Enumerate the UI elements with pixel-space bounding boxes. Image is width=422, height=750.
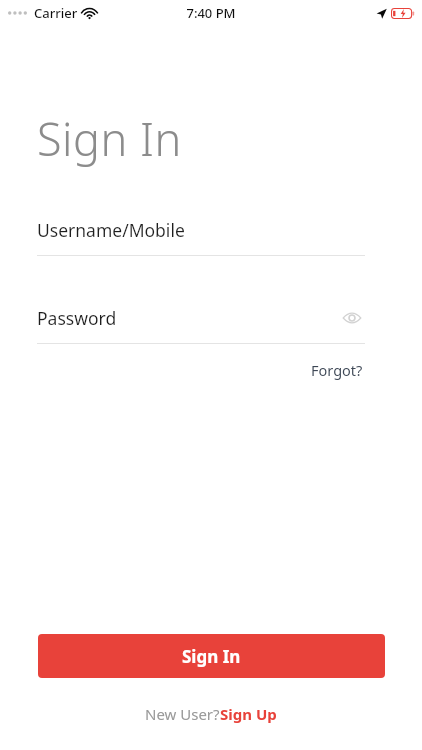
staticText: Username/Mobile	[37, 218, 185, 242]
button[interactable]: Password	[37, 305, 365, 331]
staticText: 7:40 PM	[186, 4, 236, 22]
staticText: Password	[37, 306, 117, 330]
staticText: Forgot?	[311, 360, 363, 380]
button[interactable]: Sign In	[38, 634, 385, 678]
button[interactable]: Forgot?	[309, 358, 365, 382]
staticText: Carrier	[34, 4, 78, 22]
button[interactable]: Username/Mobile	[37, 218, 365, 256]
staticText: New User?	[145, 704, 220, 724]
button[interactable]: Show password	[339, 305, 365, 331]
staticText: Sign In	[182, 645, 241, 668]
button[interactable]: Sign Up	[220, 704, 277, 724]
staticText: Sign Up	[220, 704, 277, 724]
staticText: Sign In	[37, 108, 182, 169]
